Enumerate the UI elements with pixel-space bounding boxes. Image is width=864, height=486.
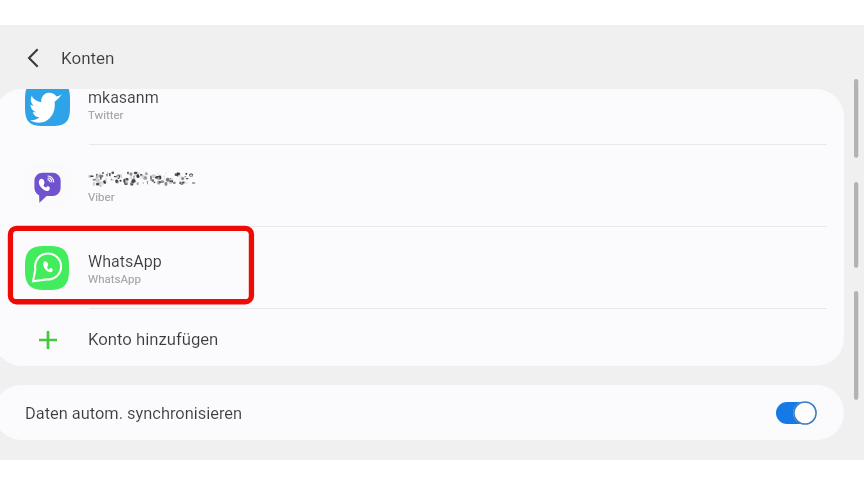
staticText: WhatsApp (88, 252, 162, 271)
button[interactable]: Auto sync data toggle (776, 399, 818, 427)
staticText: Daten autom. synchronisieren (25, 404, 243, 423)
button[interactable]: Daten autom. synchronisieren (0, 385, 844, 440)
staticText: Konten (61, 48, 115, 68)
button[interactable]: mkasanm (0, 89, 844, 144)
button[interactable]: WhatsApp (0, 227, 844, 308)
staticText: Twitter (88, 108, 124, 121)
staticText: mkasanm (88, 89, 159, 107)
button[interactable]: Viber (0, 145, 844, 226)
staticText: WhatsApp (88, 272, 141, 285)
button[interactable]: Konto hinzufügen (0, 309, 844, 366)
button[interactable]: Back (12, 36, 54, 78)
staticText: Viber (88, 190, 115, 203)
staticText: Konto hinzufügen (88, 330, 219, 350)
